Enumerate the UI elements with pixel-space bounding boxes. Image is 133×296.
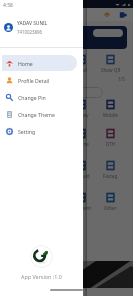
button[interactable]: Setting [2,123,77,139]
staticText: 4:58 [3,2,13,9]
staticText: 7410023896 [17,29,43,35]
staticText: 1/5 [118,76,125,82]
button[interactable]: Change Theme [2,106,77,122]
staticText: Payment [72,205,92,211]
staticText: Show QR [101,67,121,73]
staticText: Scan [18,67,29,73]
staticText: Phone [75,141,89,147]
staticText: Prepaid [73,173,90,179]
staticText: Other [104,205,117,211]
button[interactable]: Change Pin [2,89,77,105]
staticText: App Version :1.0 [21,273,62,280]
staticText: Loan [47,112,58,118]
staticText: DTH [106,141,116,147]
staticText: Money [74,112,89,118]
staticText: Profile Detail [18,77,50,84]
staticText: Mobile [103,112,118,118]
staticText: YADAV SUNIL [17,20,48,27]
button[interactable]: Home [2,55,77,71]
staticText: Pay [49,67,57,73]
button[interactable]: Profile Detail [2,72,77,88]
staticText: Change Theme [18,111,55,118]
staticText: Home [18,60,33,67]
staticText: Bus [19,112,28,118]
staticText: Change Pin [18,94,46,101]
staticText: Fastag [103,173,118,179]
staticText: Send [76,67,87,73]
staticText: Setting [18,128,36,135]
